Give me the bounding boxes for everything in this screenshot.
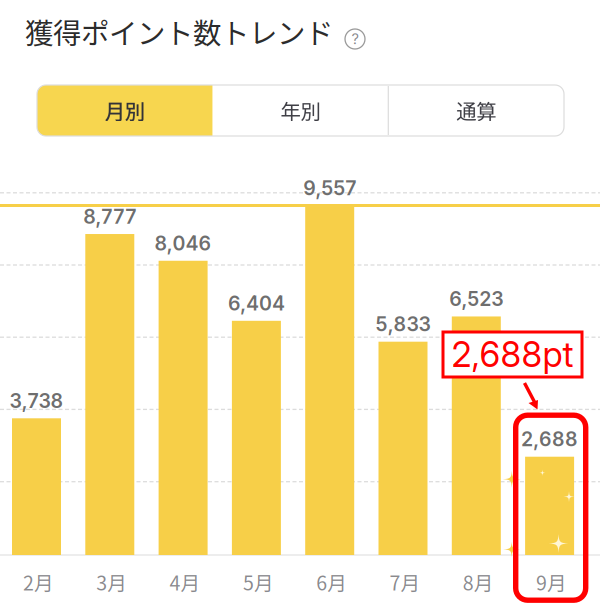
staticText: 5月 bbox=[243, 568, 274, 596]
staticText: 2,688pt bbox=[451, 333, 573, 375]
staticText: 年別 bbox=[280, 96, 320, 125]
staticText: 3月 bbox=[96, 568, 127, 596]
button[interactable]: 通算 bbox=[388, 85, 564, 136]
staticText: 獲得ポイント数トレンド bbox=[25, 11, 333, 52]
staticText: 6,523 bbox=[449, 287, 503, 311]
button[interactable]: ヘルプ bbox=[339, 23, 371, 55]
staticText: 9月 bbox=[536, 568, 567, 596]
staticText: 2月 bbox=[23, 568, 54, 596]
button[interactable]: 月別 bbox=[37, 85, 213, 136]
staticText: 8,046 bbox=[155, 231, 212, 255]
staticText: ? bbox=[351, 30, 358, 48]
staticText: 2,688 bbox=[521, 427, 578, 451]
staticText: 6月 bbox=[316, 568, 347, 596]
staticText: 4月 bbox=[170, 568, 201, 596]
staticText: 3,738 bbox=[9, 389, 63, 413]
staticText: 7月 bbox=[389, 568, 420, 596]
staticText: 8,777 bbox=[83, 205, 136, 228]
staticText: 9,557 bbox=[303, 176, 356, 200]
staticText: 月別 bbox=[105, 96, 145, 125]
staticText: 通算 bbox=[456, 96, 496, 125]
button[interactable]: 年別 bbox=[213, 85, 388, 136]
staticText: 5,833 bbox=[375, 312, 430, 336]
staticText: 6,404 bbox=[228, 291, 285, 315]
staticText: 8月 bbox=[463, 568, 494, 596]
